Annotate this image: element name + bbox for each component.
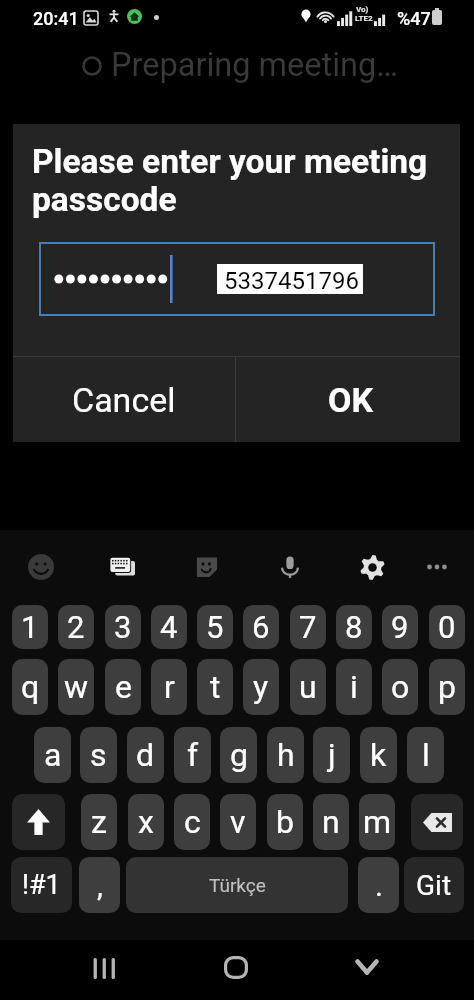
staticText: Türkçe — [209, 874, 266, 896]
button[interactable]: r — [151, 659, 187, 715]
staticText: 5 — [206, 609, 224, 645]
button[interactable]: t — [197, 659, 233, 715]
staticText: a — [44, 736, 62, 774]
button[interactable]: h — [267, 727, 304, 783]
staticText: . — [375, 868, 383, 903]
button[interactable]: Git — [404, 857, 464, 913]
staticText: w — [64, 668, 89, 706]
button[interactable]: d — [127, 727, 164, 783]
staticText: d — [136, 736, 155, 774]
staticText: q — [21, 668, 40, 706]
button[interactable]: Backspace — [411, 794, 463, 850]
button[interactable]: 6 — [243, 605, 279, 649]
button[interactable]: Settings — [352, 547, 392, 587]
button[interactable]: Emoji — [21, 547, 61, 587]
button[interactable]: 7 — [290, 605, 326, 649]
button[interactable]: a — [34, 727, 71, 783]
staticText: Git — [416, 869, 452, 902]
staticText: 8 — [345, 609, 363, 645]
staticText: m — [363, 803, 392, 841]
button[interactable]: i — [336, 659, 372, 715]
button[interactable]: c — [174, 794, 210, 850]
staticText: 1 — [21, 609, 39, 645]
button[interactable]: s — [80, 727, 117, 783]
button[interactable]: p — [429, 659, 465, 715]
button[interactable]: Cancel — [13, 357, 235, 442]
button[interactable]: j — [313, 727, 350, 783]
staticText: t — [210, 668, 221, 706]
button[interactable]: 1 — [12, 605, 48, 649]
staticText: f — [187, 736, 199, 774]
staticText: r — [164, 668, 175, 706]
staticText: y — [253, 668, 269, 706]
staticText: i — [350, 668, 358, 706]
staticText: 6 — [252, 609, 270, 645]
staticText: b — [276, 803, 294, 841]
staticText: Vo) — [356, 5, 369, 14]
button[interactable]: More options — [417, 547, 457, 587]
staticText: o — [391, 668, 410, 706]
button[interactable]: 2 — [58, 605, 94, 649]
staticText: 5337451796 — [224, 267, 359, 295]
button[interactable]: u — [290, 659, 326, 715]
staticText: k — [370, 736, 387, 774]
button[interactable]: k — [360, 727, 397, 783]
button[interactable]: q — [12, 659, 48, 715]
button[interactable]: b — [267, 794, 303, 850]
button[interactable]: 5337451796 — [217, 264, 363, 294]
button[interactable]: OK — [239, 357, 463, 442]
staticText: OK — [328, 380, 374, 420]
button[interactable]: Keyboard — [103, 547, 143, 587]
button[interactable]: o — [382, 659, 418, 715]
staticText: %47 — [397, 8, 431, 29]
button[interactable]: !#1 — [11, 857, 72, 913]
button[interactable]: z — [81, 794, 117, 850]
staticText: , — [97, 868, 103, 903]
button[interactable]: 9 — [382, 605, 418, 649]
button[interactable]: 3 — [105, 605, 141, 649]
button[interactable]: g — [220, 727, 257, 783]
staticText: 3 — [114, 609, 132, 645]
staticText: j — [328, 736, 336, 774]
button[interactable]: v — [220, 794, 256, 850]
staticText: g — [230, 736, 248, 774]
button[interactable]: 0 — [429, 605, 465, 649]
staticText: 4 — [160, 609, 178, 645]
staticText: 20:41 — [33, 8, 79, 29]
staticText: 0 — [438, 609, 456, 645]
staticText: u — [299, 668, 317, 706]
button[interactable]: 8 — [336, 605, 372, 649]
button[interactable]: m — [359, 794, 395, 850]
button[interactable]: Shift — [12, 794, 65, 850]
staticText: x — [138, 803, 154, 841]
button[interactable]: , — [79, 857, 120, 913]
staticText: n — [322, 803, 340, 841]
staticText: !#1 — [22, 869, 61, 901]
staticText: LTE2 — [355, 14, 373, 23]
staticText: p — [438, 668, 456, 706]
button[interactable]: 4 — [151, 605, 187, 649]
button[interactable]: . — [358, 857, 399, 913]
button[interactable]: l — [407, 727, 444, 783]
staticText: Please enter your meeting passcode — [32, 142, 444, 219]
button[interactable]: Hide keyboard — [336, 936, 398, 998]
staticText: 7 — [299, 609, 317, 645]
button[interactable]: f — [174, 727, 211, 783]
staticText: Cancel — [72, 380, 176, 420]
button[interactable]: e — [105, 659, 141, 715]
button[interactable]: y — [243, 659, 279, 715]
staticText: v — [230, 803, 246, 841]
staticText: Preparing meeting… — [111, 46, 398, 84]
button[interactable]: x — [128, 794, 164, 850]
button[interactable]: Recents — [72, 937, 134, 999]
staticText: l — [422, 736, 430, 774]
button[interactable]: Stickers — [187, 547, 227, 587]
staticText: h — [277, 736, 295, 774]
button[interactable]: Türkçe — [126, 857, 348, 913]
button[interactable]: w — [58, 659, 94, 715]
button[interactable]: Home — [205, 936, 267, 998]
button[interactable]: n — [313, 794, 349, 850]
staticText: 9 — [391, 609, 409, 645]
button[interactable]: Voice input — [270, 547, 310, 587]
button[interactable]: 5 — [197, 605, 233, 649]
